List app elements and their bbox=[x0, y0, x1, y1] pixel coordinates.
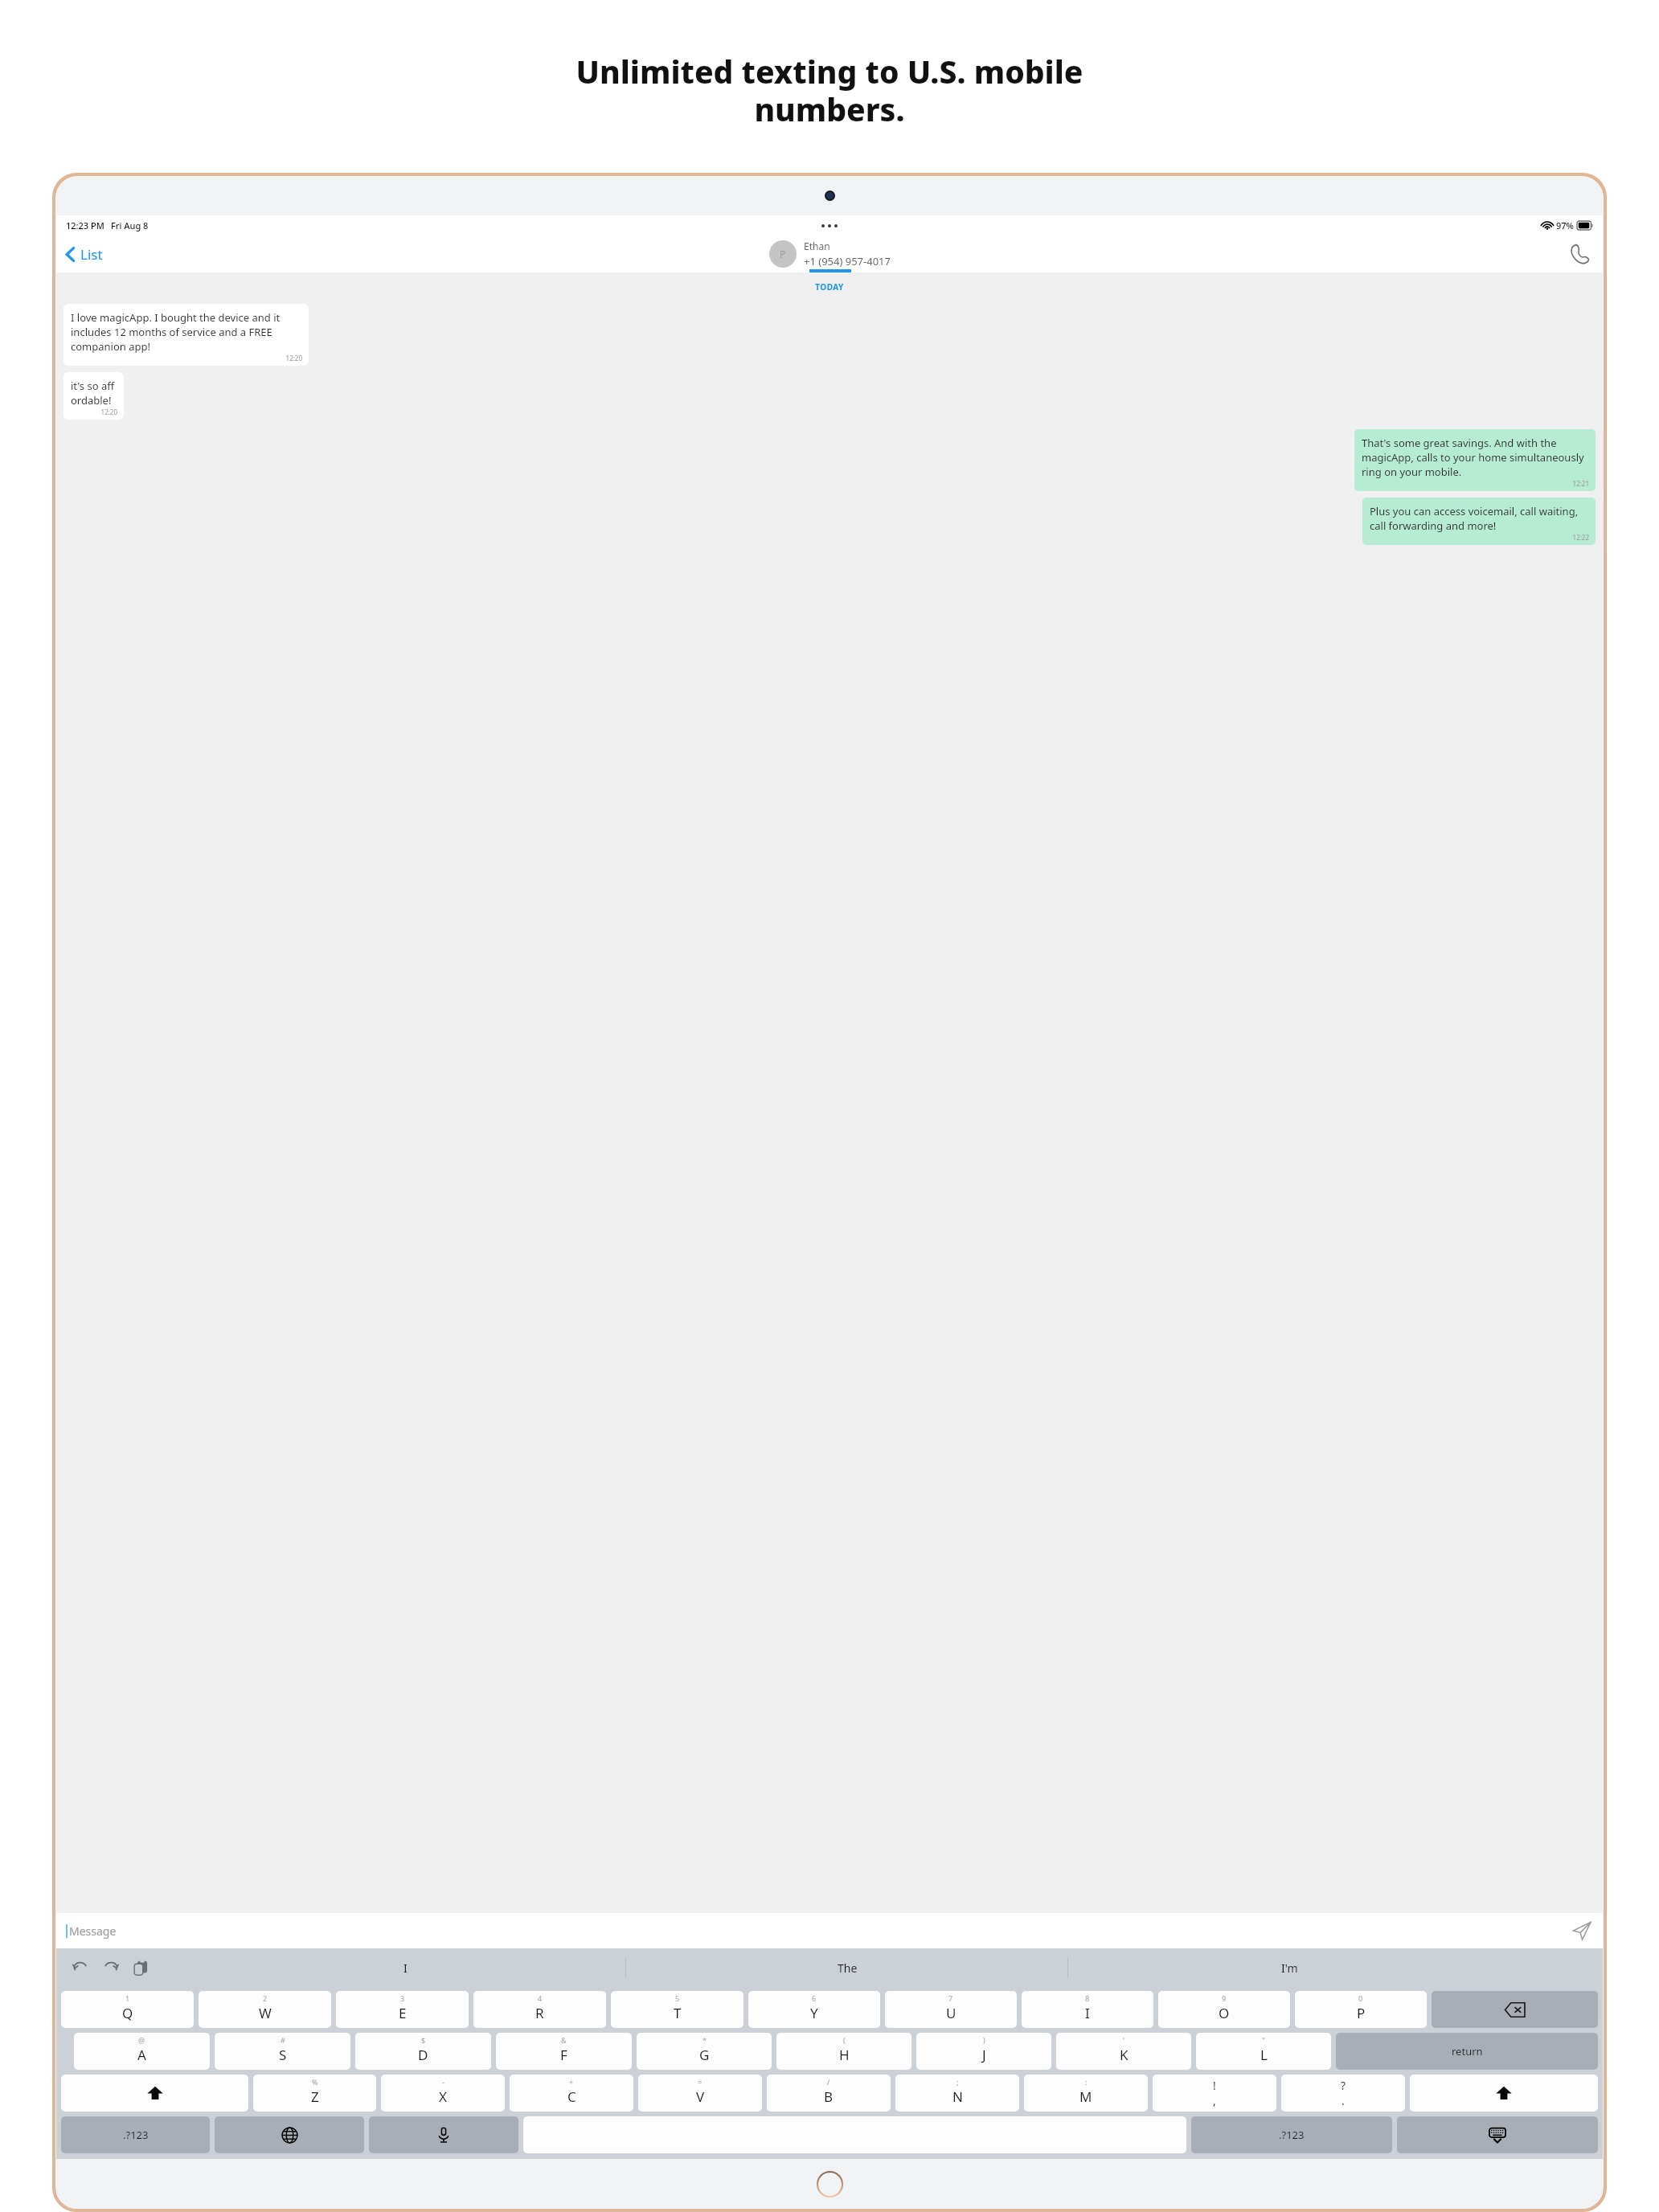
button[interactable]: .?123 bbox=[61, 2116, 210, 2153]
button[interactable]: ! bbox=[1153, 2075, 1276, 2112]
button[interactable]: 9 bbox=[1158, 1991, 1290, 2028]
staticText: TODAY bbox=[56, 281, 1603, 293]
staticText: I bbox=[403, 1960, 408, 1976]
button[interactable]: .?123 bbox=[1191, 2116, 1392, 2153]
button[interactable]: Hide keyboard bbox=[1397, 2116, 1598, 2153]
staticText: Unlimited texting to U.S. mobile numbers… bbox=[24, 50, 1635, 130]
button[interactable]: - bbox=[381, 2075, 505, 2112]
button[interactable]: it's so affordable! bbox=[63, 372, 124, 420]
button[interactable]: Space bbox=[523, 2116, 1186, 2153]
button[interactable]: + bbox=[510, 2075, 633, 2112]
staticText: A bbox=[137, 2046, 146, 2064]
staticText: B bbox=[824, 2087, 834, 2106]
button[interactable]: 6 bbox=[748, 1991, 880, 2028]
button[interactable]: = bbox=[638, 2075, 762, 2112]
staticText: .?123 bbox=[1279, 2128, 1305, 2142]
button[interactable]: ( bbox=[776, 2033, 911, 2070]
staticText: Y bbox=[810, 2004, 818, 2022]
staticText: U bbox=[946, 2004, 956, 2022]
staticText: 3 bbox=[400, 1993, 405, 2003]
button[interactable]: Send bbox=[1572, 1921, 1591, 1940]
staticText: 12:22 bbox=[1370, 533, 1589, 542]
button[interactable]: I'm bbox=[1068, 1948, 1510, 1987]
staticText: P bbox=[780, 248, 786, 260]
staticText: Message bbox=[69, 1923, 117, 1939]
staticText: Ethan bbox=[804, 240, 830, 252]
staticText: List bbox=[80, 245, 103, 264]
button[interactable] bbox=[1432, 1991, 1598, 2028]
staticText: O bbox=[1219, 2004, 1230, 2022]
button[interactable]: 3 bbox=[336, 1991, 469, 2028]
button[interactable]: 1 bbox=[61, 1991, 194, 2028]
staticText: 12:21 bbox=[1362, 479, 1589, 488]
button[interactable]: Shift bbox=[61, 2075, 248, 2112]
staticText: . bbox=[1342, 2093, 1345, 2108]
staticText: 1 bbox=[125, 1993, 130, 2003]
staticText: D bbox=[418, 2046, 428, 2064]
button[interactable]: : bbox=[1024, 2075, 1148, 2112]
button[interactable]: That's some great savings. And with the … bbox=[1354, 429, 1596, 491]
button[interactable]: Message bbox=[56, 1913, 1603, 1948]
staticText: R bbox=[535, 2004, 544, 2022]
button[interactable]: Redo bbox=[100, 1956, 122, 1979]
staticText: I'm bbox=[1281, 1960, 1298, 1976]
staticText: ! bbox=[1213, 2078, 1216, 2093]
staticText: 8 bbox=[1085, 1993, 1090, 2003]
staticText: .?123 bbox=[123, 2128, 149, 2142]
button[interactable]: 8 bbox=[1022, 1991, 1153, 2028]
staticText: K bbox=[1120, 2046, 1129, 2064]
staticText: I love magicApp. I bought the device and… bbox=[71, 310, 302, 354]
staticText: ( bbox=[843, 2035, 846, 2045]
staticText: I bbox=[1085, 2004, 1090, 2022]
staticText: : bbox=[1085, 2077, 1088, 2087]
button[interactable]: 4 bbox=[473, 1991, 606, 2028]
staticText: 12:23 PM bbox=[66, 219, 104, 231]
staticText: The bbox=[838, 1960, 858, 1976]
staticText: E bbox=[399, 2004, 407, 2022]
button[interactable]: P bbox=[769, 240, 891, 268]
button[interactable]: 5 bbox=[611, 1991, 743, 2028]
button[interactable]: List bbox=[56, 240, 113, 268]
staticText: Fri Aug 8 bbox=[111, 219, 149, 231]
staticText: F bbox=[560, 2046, 567, 2064]
button[interactable]: return bbox=[1336, 2033, 1598, 2070]
staticText: 2 bbox=[263, 1993, 268, 2003]
button[interactable]: % bbox=[253, 2075, 376, 2112]
staticText: @ bbox=[138, 2035, 145, 2045]
button[interactable]: 0 bbox=[1295, 1991, 1427, 2028]
button[interactable]: ? bbox=[1281, 2075, 1405, 2112]
staticText: Plus you can access voicemail, call wait… bbox=[1370, 504, 1589, 533]
button[interactable]: Shift bbox=[1410, 2075, 1598, 2112]
button[interactable]: * bbox=[637, 2033, 772, 2070]
button[interactable]: 7 bbox=[885, 1991, 1017, 2028]
button[interactable]: ) bbox=[916, 2033, 1051, 2070]
button[interactable]: & bbox=[496, 2033, 632, 2070]
button[interactable]: I love magicApp. I bought the device and… bbox=[63, 304, 309, 366]
button[interactable]: Change language bbox=[215, 2116, 364, 2153]
staticText: Z bbox=[311, 2087, 319, 2106]
button[interactable]: I bbox=[185, 1948, 626, 1987]
staticText: 12:20 bbox=[71, 354, 302, 363]
button[interactable]: ' bbox=[1056, 2033, 1191, 2070]
staticText: it's so affordable! bbox=[71, 379, 117, 408]
staticText: P bbox=[1357, 2004, 1366, 2022]
button[interactable]: @ bbox=[74, 2033, 210, 2070]
button[interactable]: Plus you can access voicemail, call wait… bbox=[1362, 498, 1596, 545]
button[interactable]: $ bbox=[355, 2033, 491, 2070]
button[interactable]: ; bbox=[895, 2075, 1019, 2112]
button[interactable]: Undo bbox=[69, 1956, 92, 1979]
button[interactable]: The bbox=[626, 1948, 1068, 1987]
button[interactable]: # bbox=[215, 2033, 350, 2070]
button[interactable]: Dictation bbox=[369, 2116, 518, 2153]
staticText: N bbox=[952, 2087, 963, 2106]
button[interactable]: 2 bbox=[199, 1991, 331, 2028]
staticText: ) bbox=[983, 2035, 985, 2045]
staticText: return bbox=[1452, 2044, 1483, 2058]
button[interactable]: " bbox=[1196, 2033, 1331, 2070]
button[interactable]: / bbox=[767, 2075, 891, 2112]
staticText: 6 bbox=[812, 1993, 817, 2003]
button[interactable]: Call bbox=[1570, 244, 1603, 265]
staticText: 12:20 bbox=[71, 408, 117, 416]
staticText: % bbox=[312, 2077, 318, 2087]
button[interactable]: Paste bbox=[130, 1957, 152, 1979]
